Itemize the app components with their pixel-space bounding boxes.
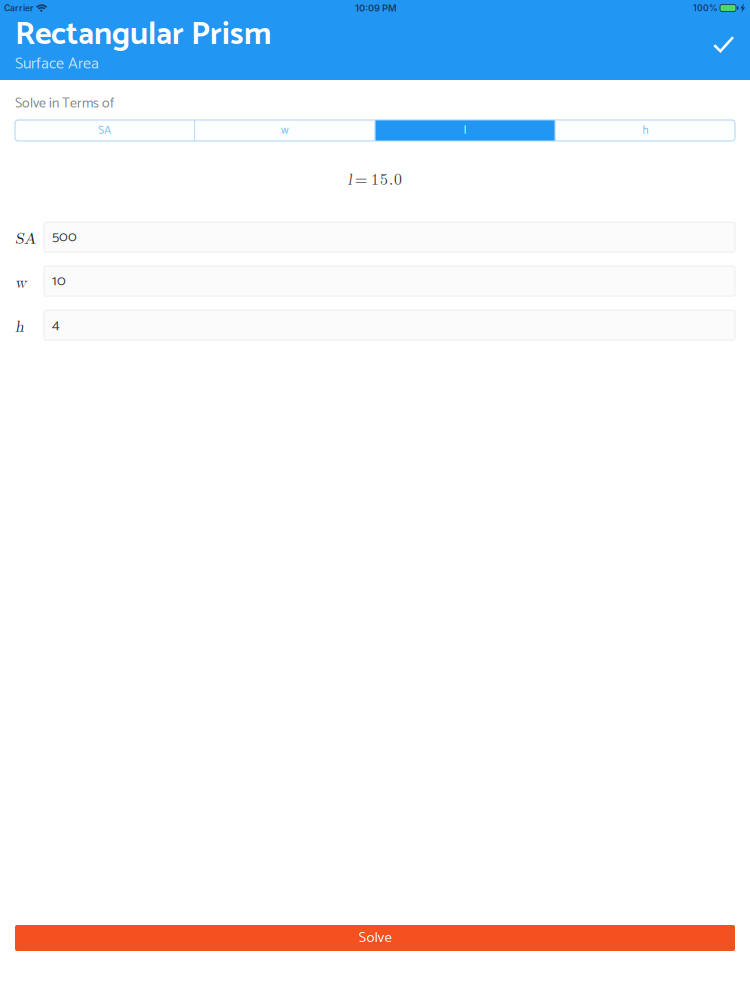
staticText: Surface Area bbox=[15, 51, 99, 77]
button[interactable]: Done bbox=[703, 26, 744, 63]
staticText: SA bbox=[15, 226, 36, 248]
staticText: Rectangular Prism bbox=[15, 9, 271, 61]
button[interactable]: 10 bbox=[44, 266, 735, 296]
staticText: Carrier bbox=[4, 3, 33, 13]
staticText: 500 bbox=[52, 225, 77, 249]
staticText: l bbox=[464, 121, 467, 140]
staticText: Solve bbox=[358, 926, 391, 950]
button[interactable]: h bbox=[556, 120, 735, 141]
button[interactable]: 500 bbox=[44, 222, 735, 252]
button[interactable]: Solve bbox=[15, 925, 735, 951]
staticText: h bbox=[642, 121, 648, 140]
staticText: h bbox=[15, 314, 24, 336]
staticText: w bbox=[281, 121, 289, 140]
staticText: 100% bbox=[693, 3, 718, 13]
staticText: 10 bbox=[52, 269, 66, 293]
button[interactable]: SA bbox=[15, 120, 194, 141]
staticText: SA bbox=[98, 121, 111, 140]
staticText: l = 15.0 bbox=[347, 167, 402, 189]
button[interactable]: 4 bbox=[44, 310, 735, 340]
staticText: w bbox=[15, 270, 27, 292]
button[interactable]: w bbox=[195, 120, 374, 141]
button[interactable]: l bbox=[375, 120, 555, 141]
staticText: Solve in Terms of bbox=[15, 92, 114, 115]
staticText: 4 bbox=[52, 313, 60, 337]
staticText: 10:09 PM bbox=[355, 2, 397, 14]
